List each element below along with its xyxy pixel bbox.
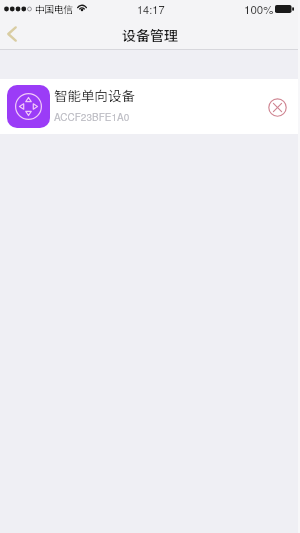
staticText: 14:17 bbox=[137, 1, 165, 17]
staticText: 100% bbox=[244, 1, 274, 17]
button[interactable]: Back bbox=[0, 20, 24, 50]
button[interactable]: 智能单向设备 bbox=[0, 79, 300, 134]
button[interactable]: Delete device bbox=[259, 89, 295, 125]
staticText: 智能单向设备 bbox=[54, 85, 135, 105]
staticText: 设备管理 bbox=[122, 25, 178, 45]
staticText: 中国电信 bbox=[35, 2, 74, 16]
staticText: ACCF23BFE1A0 bbox=[54, 110, 130, 124]
